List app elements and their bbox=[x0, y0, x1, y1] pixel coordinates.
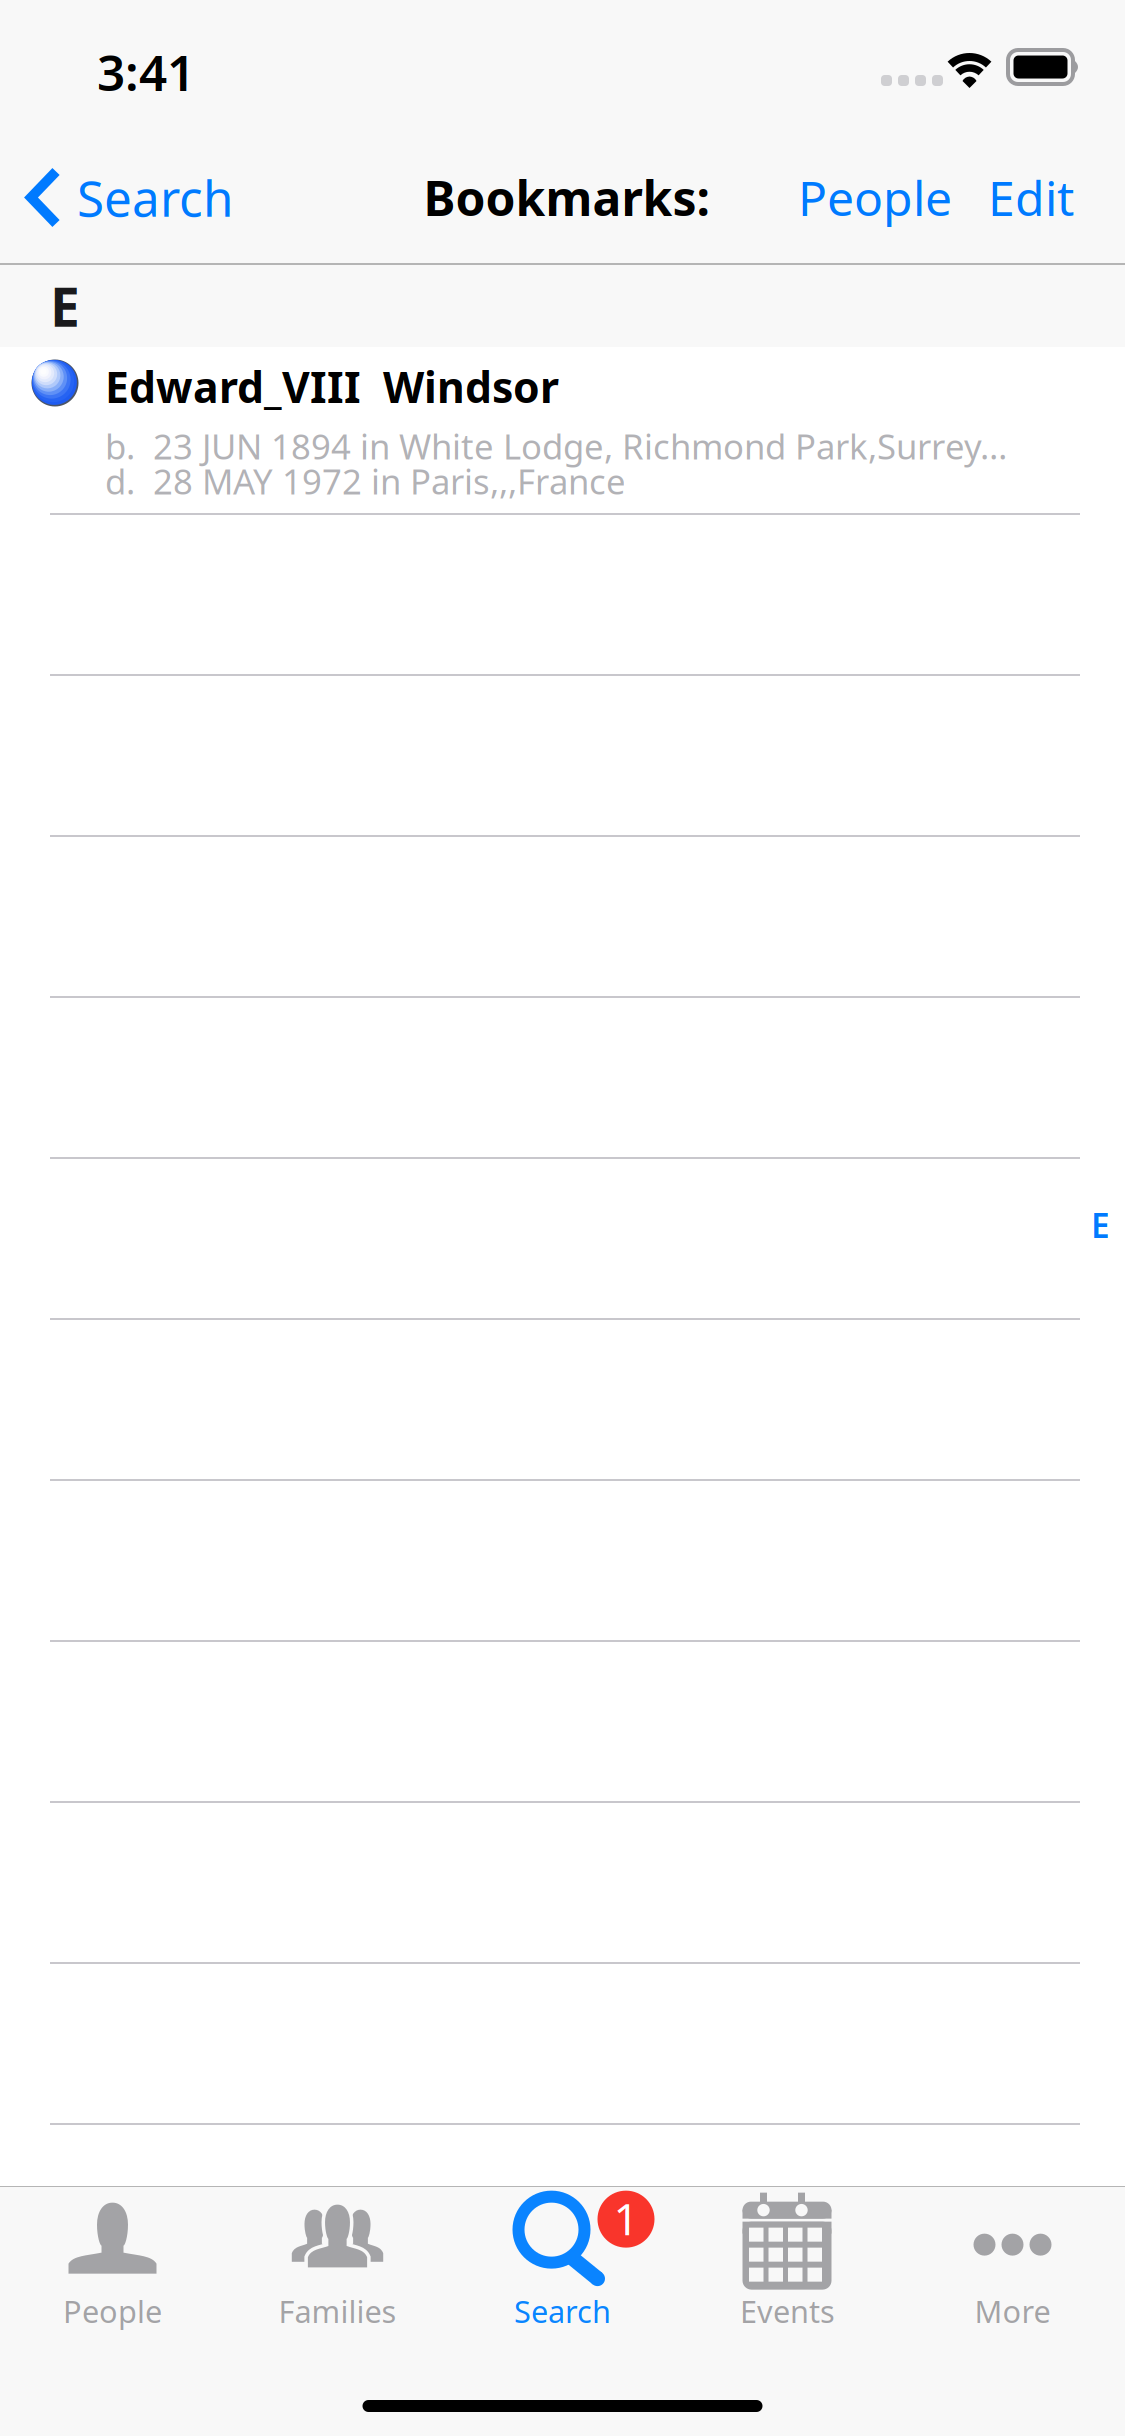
button[interactable]: Edit bbox=[966, 132, 1125, 263]
staticText: Search bbox=[514, 2291, 611, 2331]
button[interactable]: People bbox=[784, 132, 966, 263]
staticText: Edward_VIII Windsor bbox=[105, 358, 559, 415]
button[interactable]: Search bbox=[0, 132, 253, 263]
staticText: More bbox=[974, 2291, 1050, 2331]
staticText: People bbox=[798, 166, 952, 229]
button[interactable]: 1 bbox=[450, 2187, 675, 2337]
staticText: Search bbox=[77, 165, 233, 230]
staticText: d. 28 MAY 1972 in Paris,,,France bbox=[105, 458, 626, 504]
staticText: E bbox=[1091, 1203, 1110, 1247]
staticText: E bbox=[50, 271, 80, 341]
button[interactable]: Events bbox=[675, 2187, 900, 2337]
staticText: 3:41 bbox=[97, 39, 195, 104]
button[interactable]: More bbox=[900, 2187, 1125, 2337]
button[interactable]: E bbox=[1091, 1203, 1125, 1247]
staticText: 1 bbox=[613, 2189, 638, 2247]
button[interactable]: Families bbox=[225, 2187, 450, 2337]
button[interactable]: Edward_VIII Windsor bbox=[0, 347, 1125, 513]
staticText: b. 23 JUN 1894 in White Lodge, Richmond … bbox=[105, 423, 1007, 469]
staticText: Edit bbox=[988, 166, 1074, 229]
button[interactable]: People bbox=[0, 2187, 225, 2337]
staticText: Events bbox=[740, 2291, 835, 2331]
staticText: Bookmarks: bbox=[423, 166, 709, 229]
staticText: Families bbox=[278, 2291, 396, 2331]
staticText: People bbox=[63, 2291, 162, 2331]
